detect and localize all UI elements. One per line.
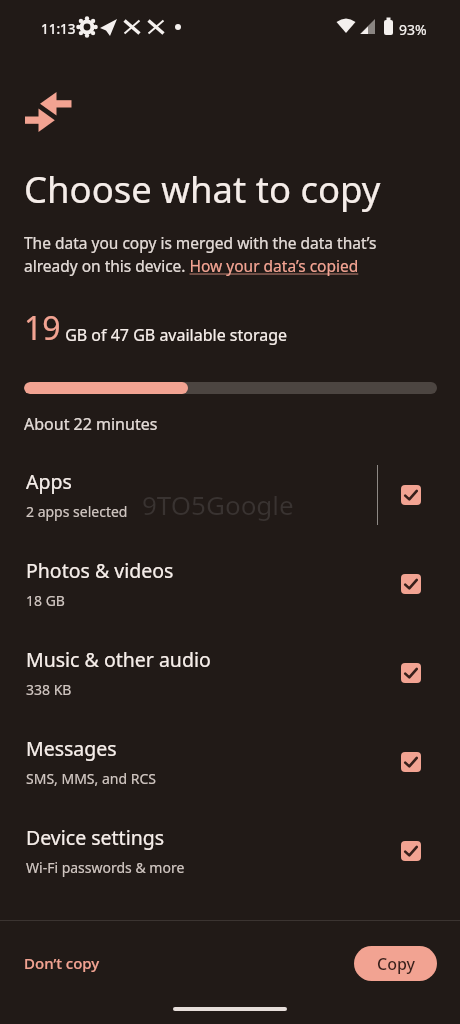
staticText: About 22 minutes [24, 413, 158, 435]
staticText: Messages [26, 735, 117, 762]
button[interactable] [401, 574, 421, 594]
staticText: 2 apps selected [26, 502, 128, 521]
staticText: Don’t copy [24, 953, 100, 973]
button[interactable]: Photos & videos [0, 539, 460, 628]
staticText: Copy [377, 953, 415, 975]
staticText: SMS, MMS, and RCS [26, 769, 156, 788]
button[interactable]: Music & other audio [0, 628, 460, 717]
staticText: Apps [26, 468, 72, 495]
staticText: Photos & videos [26, 557, 174, 584]
button[interactable]: The data you copy is merged with the dat… [24, 232, 377, 277]
staticText: 93% [399, 20, 427, 39]
button[interactable]: Apps [0, 450, 460, 539]
staticText: 19 [24, 306, 61, 350]
staticText: Device settings [26, 824, 165, 851]
button[interactable] [401, 663, 421, 683]
button[interactable] [401, 485, 421, 505]
button[interactable]: Device settings [0, 806, 460, 895]
button[interactable] [401, 841, 421, 861]
staticText: Choose what to copy [24, 164, 381, 214]
button[interactable]: Don’t copy [12, 944, 112, 982]
staticText: 338 KB [26, 680, 72, 699]
staticText: Wi-Fi passwords & more [26, 858, 185, 877]
staticText: 11:13 [41, 20, 76, 38]
staticText: GB of 47 GB available storage [61, 324, 288, 346]
staticText: 18 GB [26, 591, 65, 610]
button[interactable]: Copy [354, 946, 437, 981]
staticText: Music & other audio [26, 646, 211, 673]
staticText: 9TO5Google [142, 487, 294, 522]
button[interactable]: Messages [0, 717, 460, 806]
button[interactable] [401, 752, 421, 772]
